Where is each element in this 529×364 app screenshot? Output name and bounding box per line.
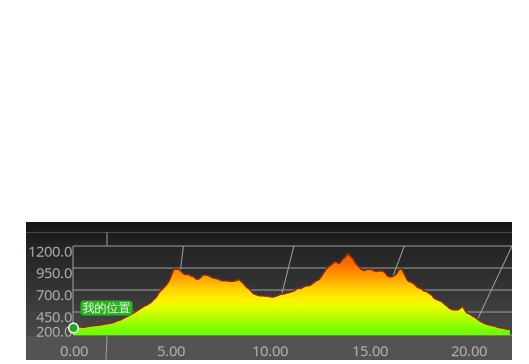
staticText: 950.0 — [36, 263, 72, 282]
staticText: 450.0 — [36, 307, 72, 326]
staticText: 200.0 — [36, 321, 72, 341]
staticText: 20.00 — [451, 341, 487, 360]
staticText: 700.0 — [36, 285, 72, 304]
staticText: 1200.0 — [28, 241, 72, 261]
staticText: 0.00 — [60, 341, 88, 360]
staticText: 15.00 — [352, 341, 388, 360]
button[interactable]: 我的位置 — [80, 300, 132, 315]
staticText: 5.00 — [157, 341, 185, 360]
staticText: 10.00 — [252, 341, 288, 360]
staticText: 我的位置 — [82, 301, 130, 315]
